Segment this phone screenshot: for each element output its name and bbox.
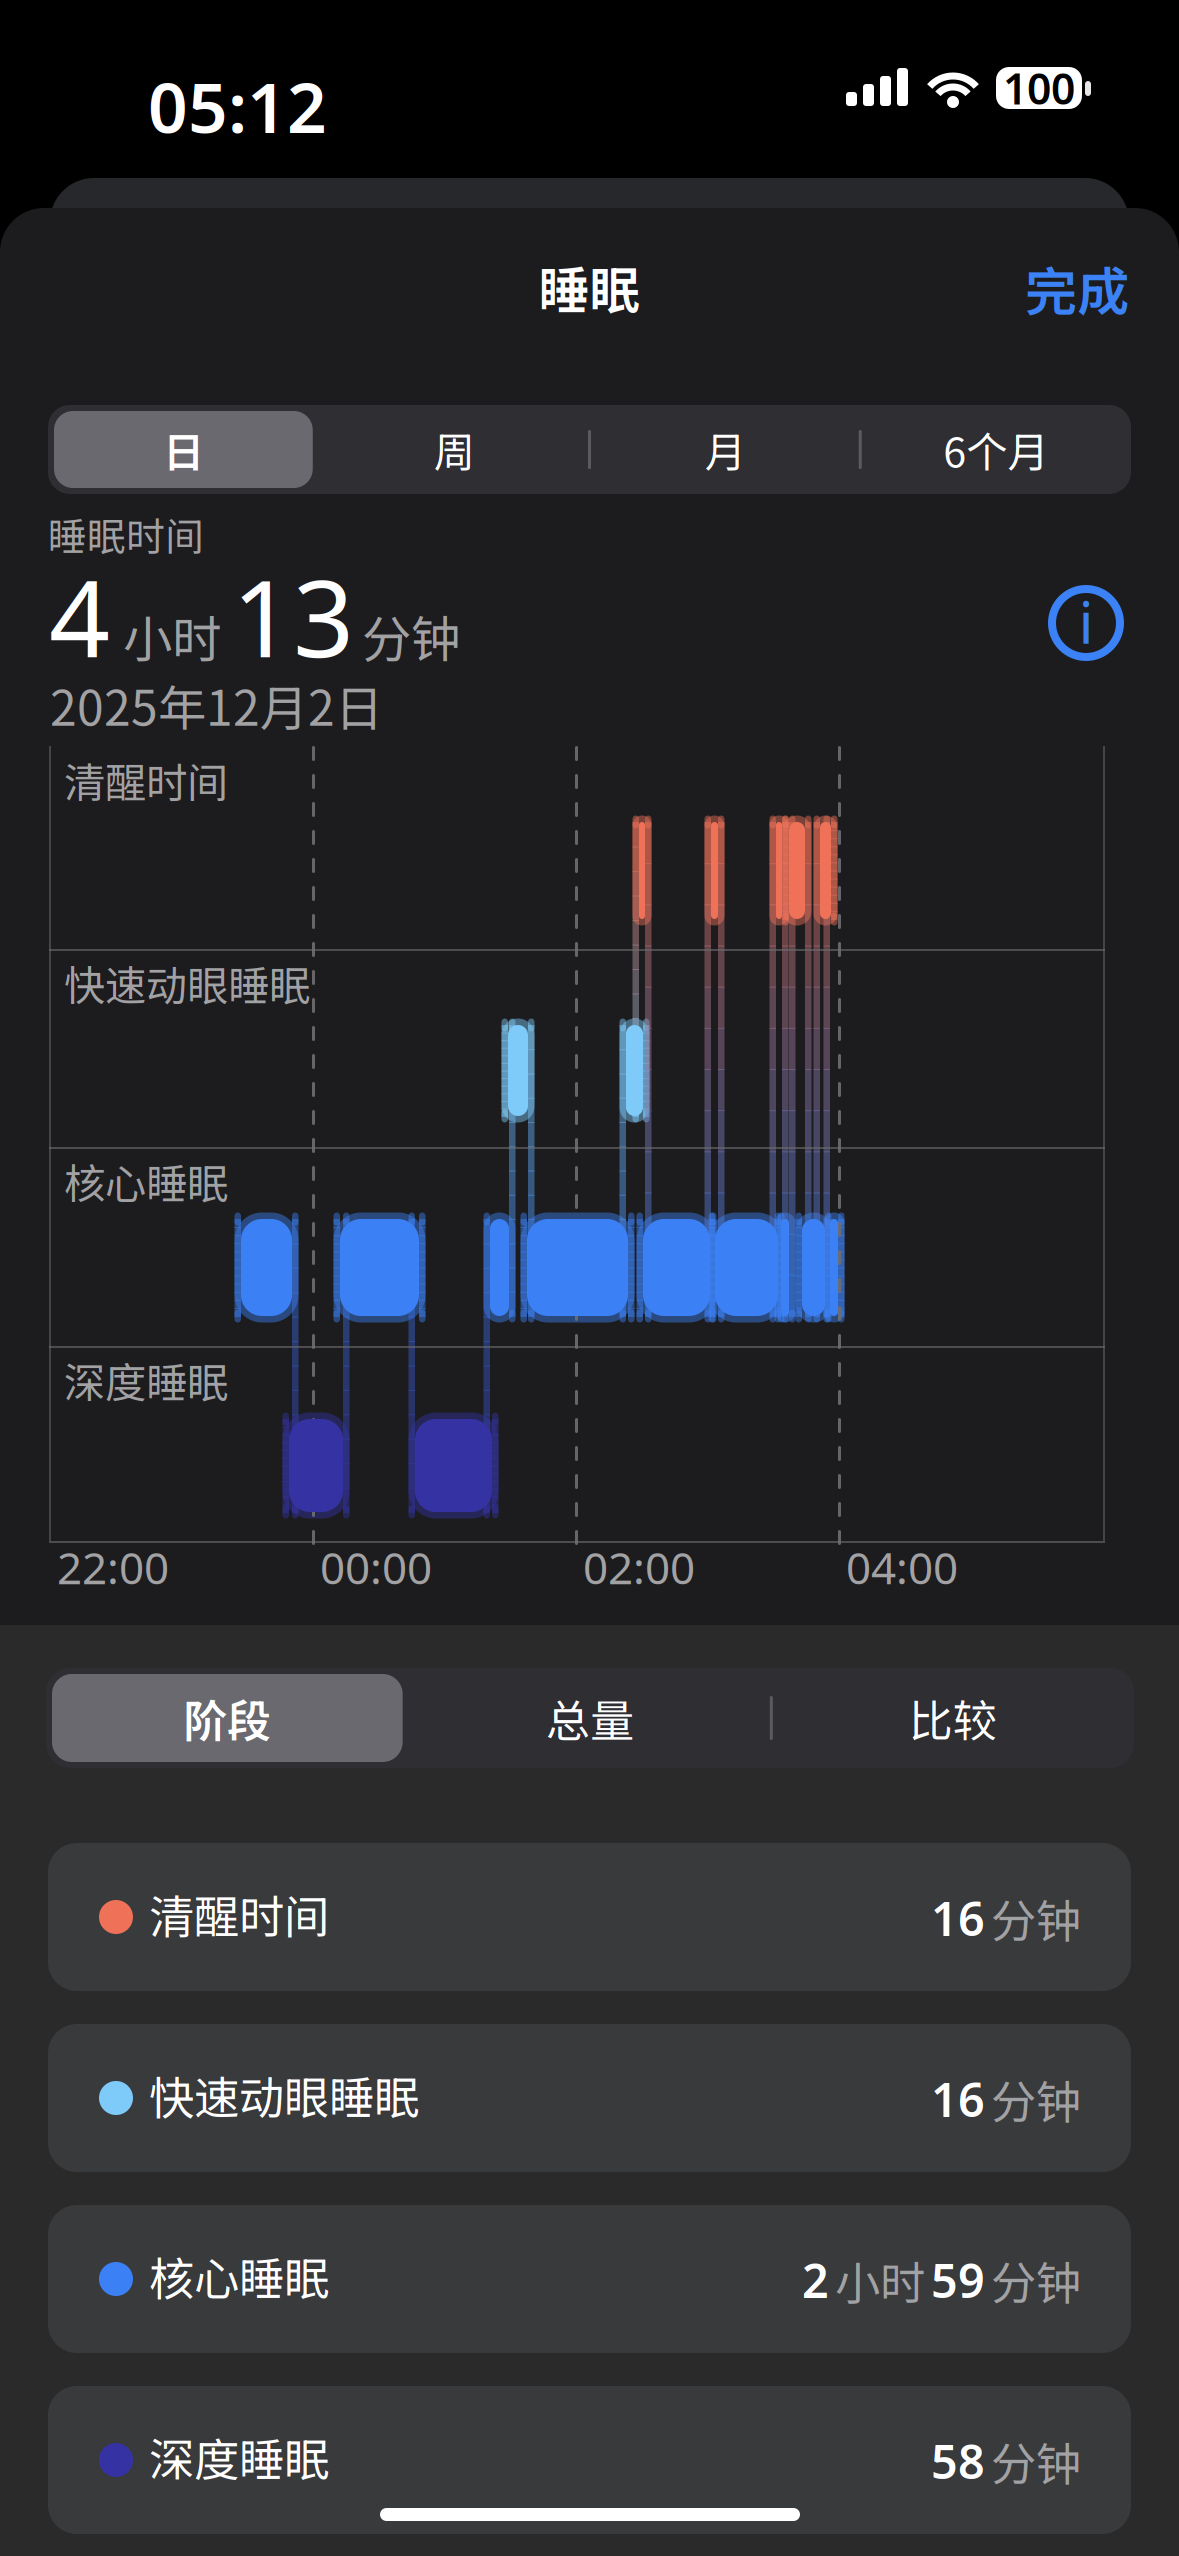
staticText: 05:12	[148, 60, 327, 152]
staticText: 睡眠时间	[48, 506, 204, 562]
button[interactable]: 比较	[771, 1668, 1134, 1768]
staticText: 2	[802, 2249, 829, 2311]
staticText: 睡眠	[538, 250, 640, 324]
button[interactable]: 总量	[409, 1668, 771, 1768]
staticText: 00:00	[320, 1538, 432, 1596]
staticText: 分钟	[991, 2066, 1081, 2132]
staticText: 16	[931, 1887, 985, 1949]
staticText: i	[1078, 582, 1093, 660]
staticText: 周	[434, 420, 475, 479]
staticText: 清醒时间	[149, 1881, 329, 1947]
staticText: 月	[704, 420, 745, 479]
button[interactable]: 核心睡眠	[48, 2205, 1131, 2353]
staticText: 快速动眼睡眠	[64, 953, 310, 1013]
button[interactable]: 清醒时间	[48, 1843, 1131, 1991]
staticText: 快速动眼睡眠	[149, 2062, 419, 2128]
button[interactable]: 月	[589, 405, 860, 494]
staticText: 核心睡眠	[149, 2243, 329, 2309]
button[interactable]: 周	[319, 405, 590, 494]
staticText: 13	[232, 545, 354, 687]
staticText: 深度睡眠	[149, 2424, 329, 2490]
staticText: 分钟	[991, 1885, 1081, 1951]
staticText: 04:00	[846, 1538, 958, 1596]
staticText: 分钟	[362, 600, 460, 671]
button[interactable]: 深度睡眠	[48, 2386, 1131, 2534]
staticText: 清醒时间	[64, 750, 228, 810]
button[interactable]: 快速动眼睡眠	[48, 2024, 1131, 2172]
staticText: 2025年12月2日	[50, 670, 383, 739]
staticText: 总量	[546, 1686, 634, 1750]
staticText: 深度睡眠	[64, 1350, 228, 1410]
staticText: 22:00	[57, 1538, 169, 1596]
button[interactable]: 6个月	[860, 405, 1131, 494]
staticText: 100	[1003, 60, 1075, 116]
staticText: 6个月	[943, 420, 1048, 479]
staticText: 分钟	[991, 2247, 1081, 2313]
button[interactable]: 完成	[929, 253, 1129, 323]
staticText: 阶段	[183, 1686, 271, 1750]
staticText: 分钟	[991, 2428, 1081, 2494]
staticText: 02:00	[583, 1538, 695, 1596]
button[interactable]: 更多信息	[1044, 581, 1128, 665]
staticText: 核心睡眠	[64, 1151, 228, 1211]
staticText: 比较	[909, 1686, 997, 1750]
button[interactable]: 日	[48, 405, 319, 494]
staticText: 小时	[835, 2247, 925, 2313]
staticText: 4	[49, 545, 110, 687]
button[interactable]: 阶段	[46, 1668, 409, 1768]
staticText: 小时	[123, 600, 221, 671]
staticText: 日	[163, 420, 204, 479]
staticText: 完成	[1025, 250, 1129, 326]
staticText: 59	[931, 2249, 985, 2311]
staticText: 58	[931, 2430, 985, 2492]
staticText: 16	[931, 2068, 985, 2130]
